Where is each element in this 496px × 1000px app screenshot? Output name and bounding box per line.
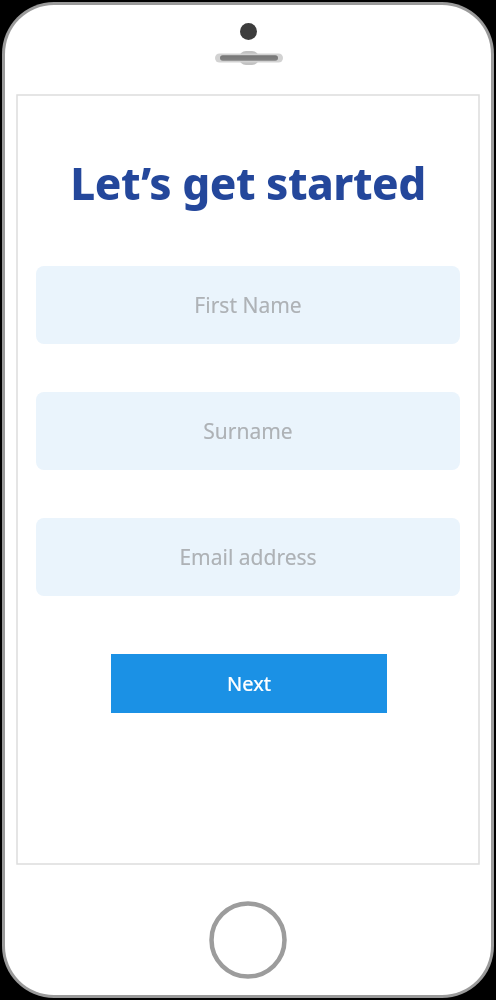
button[interactable]: Surname <box>36 392 460 470</box>
button[interactable]: First Name <box>36 266 460 344</box>
button[interactable]: Next <box>111 654 387 713</box>
button[interactable]: Home <box>209 901 287 979</box>
staticText: Next <box>227 670 271 697</box>
staticText: Email address <box>179 543 317 572</box>
button[interactable]: Email address <box>36 518 460 596</box>
staticText: Let’s get started <box>25 153 471 213</box>
staticText: First Name <box>194 291 302 320</box>
staticText: Surname <box>203 417 293 446</box>
